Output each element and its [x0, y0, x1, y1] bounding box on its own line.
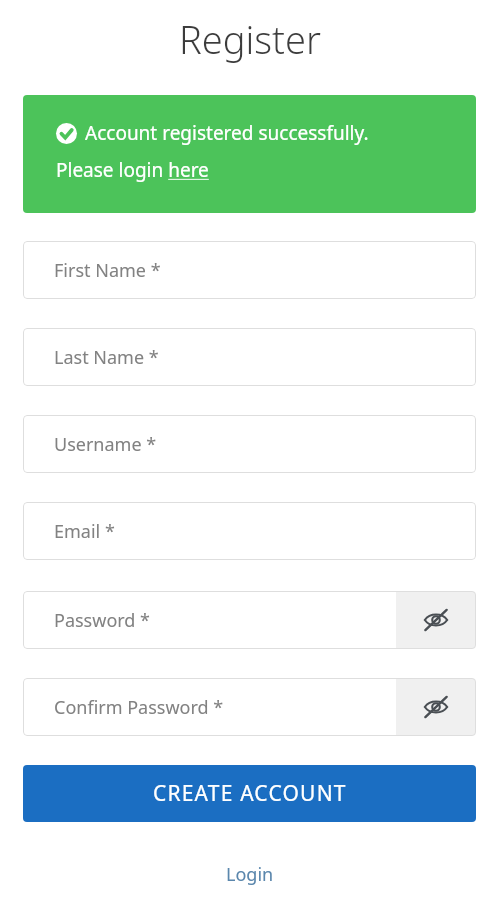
staticText: Last Name * — [54, 345, 159, 370]
button[interactable]: Password * — [23, 591, 396, 649]
staticText: Login — [226, 862, 274, 887]
staticText: First Name * — [54, 258, 161, 283]
button[interactable]: Toggle password visibility — [396, 678, 476, 736]
button[interactable]: Toggle password visibility — [396, 591, 476, 649]
button[interactable]: Last Name * — [23, 328, 476, 386]
button[interactable]: First Name * — [23, 241, 476, 299]
button[interactable]: Confirm Password * — [23, 678, 396, 736]
staticText: Password * — [54, 608, 151, 633]
button[interactable]: Account registered successfully. — [23, 95, 476, 213]
staticText: Account registered successfully. — [85, 120, 369, 146]
button[interactable]: Email * — [23, 502, 476, 560]
staticText: CREATE ACCOUNT — [153, 779, 347, 808]
button[interactable]: CREATE ACCOUNT — [23, 765, 476, 822]
button[interactable]: Username * — [23, 415, 476, 473]
staticText: Please login here — [56, 157, 209, 183]
staticText: Register — [179, 13, 321, 65]
staticText: Username * — [54, 432, 157, 457]
staticText: Confirm Password * — [54, 695, 224, 720]
button[interactable]: Login — [216, 858, 284, 891]
staticText: Email * — [54, 519, 115, 544]
